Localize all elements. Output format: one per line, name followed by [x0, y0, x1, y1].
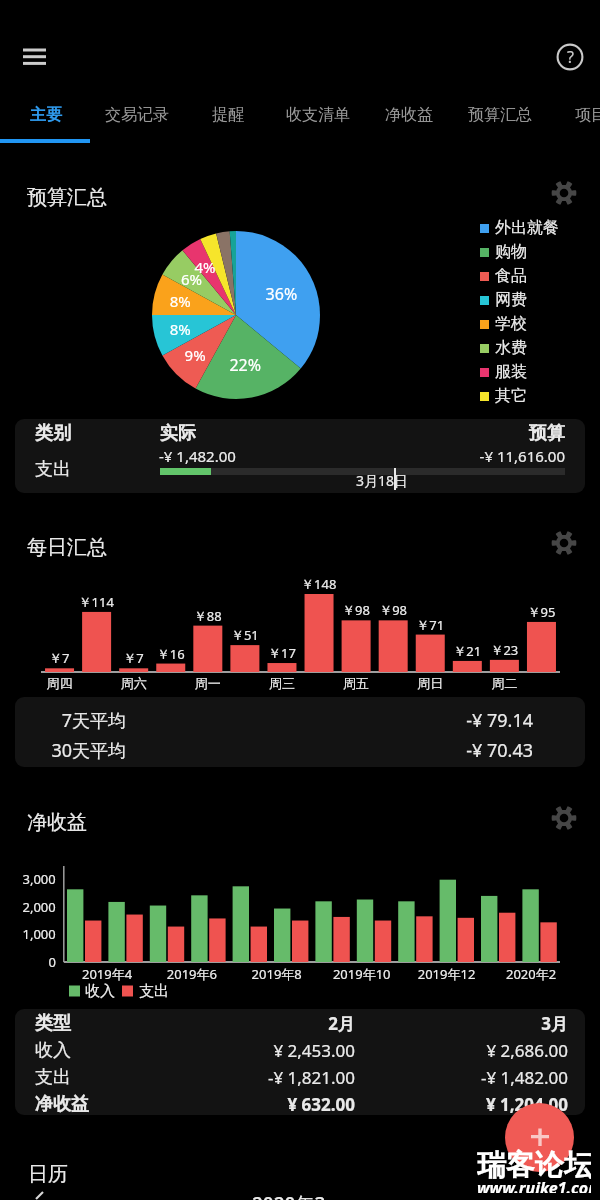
staticText: -¥ 70.43 — [333, 738, 533, 763]
staticText: 日历 — [28, 1162, 68, 1187]
staticText: -¥ 1,482.00 — [388, 1066, 568, 1089]
staticText: 网费 — [495, 290, 527, 310]
staticText: 项目 — [575, 105, 600, 125]
staticText: 收支清单 — [286, 105, 350, 125]
staticText: 预算汇总 — [468, 105, 532, 125]
button[interactable]: Open navigation menu — [0, 32, 70, 82]
staticText: 瑞客论坛 — [477, 1147, 591, 1179]
staticText: -¥ 11,616.00 — [365, 446, 565, 466]
staticText: 净收益 — [385, 105, 433, 125]
staticText: 主要 — [30, 105, 62, 125]
staticText: 净收益 — [27, 810, 87, 835]
staticText: 交易记录 — [105, 105, 169, 125]
staticText: 食品 — [495, 266, 527, 286]
staticText: 预算 — [365, 422, 565, 444]
button[interactable]: 交易记录 — [91, 95, 182, 134]
staticText: ¥ 2,453.00 — [175, 1039, 355, 1062]
staticText: 7天平均 — [15, 708, 126, 733]
button[interactable]: Add transaction — [505, 1103, 574, 1172]
staticText: ¥ 632.00 — [175, 1093, 355, 1115]
button[interactable]: Settings — [548, 177, 580, 209]
staticText: 其它 — [495, 386, 527, 406]
staticText: 3月18日 — [356, 471, 409, 490]
button[interactable]: Settings — [548, 527, 580, 559]
staticText: 提醒 — [212, 105, 244, 125]
staticText: ? — [567, 46, 574, 68]
button[interactable]: 主要 — [0, 95, 91, 134]
staticText: 实际 — [160, 422, 196, 444]
staticText: 2020年3 — [252, 1191, 326, 1200]
staticText: www.ruike1.com — [477, 1177, 591, 1193]
staticText: ¥ 1,204.00 — [388, 1093, 568, 1115]
button[interactable]: 净收益 — [363, 95, 454, 134]
button[interactable]: 收支清单 — [272, 95, 363, 134]
staticText: 类型 — [35, 1012, 71, 1035]
staticText: 收入 — [35, 1039, 71, 1062]
staticText: 预算汇总 — [27, 185, 107, 210]
staticText: 3月 — [388, 1012, 568, 1035]
staticText: 水费 — [495, 338, 527, 358]
button[interactable]: Help — [546, 33, 594, 81]
button[interactable]: 预算汇总 — [454, 95, 545, 134]
staticText: 净收益 — [35, 1093, 89, 1115]
staticText: -¥ 79.14 — [333, 708, 533, 733]
staticText: 支出 — [35, 458, 71, 480]
staticText: 外出就餐 — [495, 218, 559, 238]
staticText: 2月 — [175, 1012, 355, 1035]
staticText: -¥ 1,821.00 — [175, 1066, 355, 1089]
staticText: 类别 — [35, 422, 71, 444]
staticText: 购物 — [495, 242, 527, 262]
button[interactable]: Settings — [548, 802, 580, 834]
button[interactable]: 提醒 — [182, 95, 273, 134]
staticText: 支出 — [35, 1066, 71, 1089]
staticText: ¥ 2,686.00 — [388, 1039, 568, 1062]
staticText: 30天平均 — [15, 738, 126, 763]
staticText: -¥ 1,482.00 — [159, 446, 236, 466]
staticText: 服装 — [495, 362, 527, 382]
staticText: 每日汇总 — [27, 535, 107, 560]
button[interactable]: 项目 — [545, 95, 600, 134]
staticText: 学校 — [495, 314, 527, 334]
